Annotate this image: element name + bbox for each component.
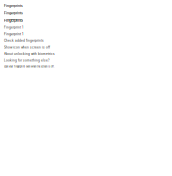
staticText: Scan your fingerprint even when the scre… [4, 65, 55, 68]
staticText: Show icon when screen is off [4, 46, 50, 49]
staticText: Looking for something else? [4, 59, 50, 62]
staticText: Fingerprint 1 [4, 26, 23, 29]
staticText: Fingerprint 1 [4, 32, 23, 36]
staticText: Check added fingerprints [4, 39, 44, 42]
staticText: Fingerprints [4, 11, 23, 15]
staticText: About unlocking with biometrics [4, 52, 55, 56]
staticText: Fingerprints [4, 4, 23, 8]
staticText: Fingerprints [4, 18, 23, 23]
